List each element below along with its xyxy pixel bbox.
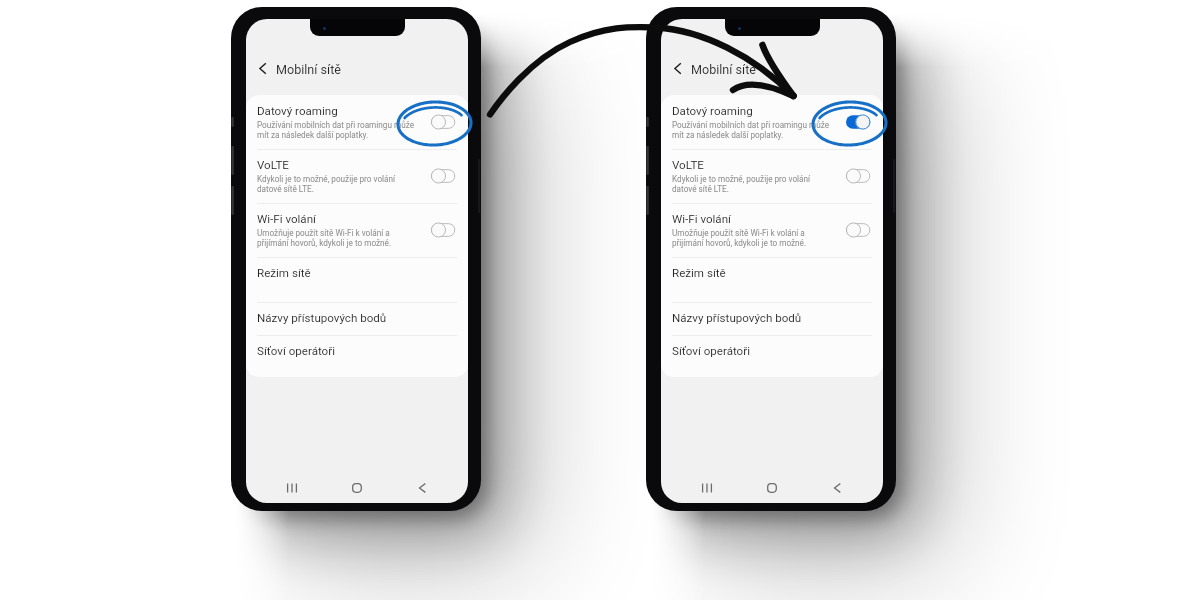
staticText: Síťoví operátoři (672, 344, 750, 358)
staticText: Mobilní sítě (276, 62, 341, 77)
button[interactable]: Toggle (431, 222, 456, 238)
button[interactable]: Recent apps (279, 475, 305, 501)
staticText: VoLTE (257, 158, 289, 172)
button[interactable]: Toggle (431, 114, 456, 130)
staticText: Datový roaming (672, 104, 753, 118)
staticText: Kdykoli je to možné, použije pro volání … (257, 174, 396, 194)
staticText: Síťoví operátoři (257, 344, 335, 358)
button[interactable]: Datový roaming (246, 95, 468, 149)
staticText: Datový roaming (257, 104, 338, 118)
staticText: Mobilní sítě (691, 62, 756, 77)
staticText: Umožňuje použít sítě Wi-Fi k volání a př… (257, 228, 392, 248)
button[interactable]: Toggle (846, 114, 871, 130)
staticText: VoLTE (672, 158, 704, 172)
button[interactable]: Režim sítě (661, 257, 883, 302)
button[interactable]: Datový roaming (661, 95, 883, 149)
staticText: Wi-Fi volání (257, 212, 316, 226)
staticText: Názvy přístupových bodů (672, 311, 802, 325)
button[interactable]: Wi-Fi volání (246, 203, 468, 257)
button[interactable]: Wi-Fi volání (661, 203, 883, 257)
button[interactable]: Názvy přístupových bodů (246, 302, 468, 336)
staticText: Používání mobilních dat při roamingu můž… (257, 120, 414, 140)
button[interactable]: Back (254, 58, 270, 79)
button[interactable]: Názvy přístupových bodů (661, 302, 883, 336)
button[interactable]: Toggle (846, 168, 871, 184)
button[interactable]: Režim sítě (246, 257, 468, 302)
button[interactable]: Toggle (431, 168, 456, 184)
staticText: Režim sítě (257, 266, 311, 280)
button[interactable]: VoLTE (661, 149, 883, 203)
staticText: Režim sítě (672, 266, 726, 280)
button[interactable]: Back (409, 475, 435, 501)
button[interactable]: Toggle (846, 222, 871, 238)
button[interactable]: Recent apps (694, 475, 720, 501)
staticText: Názvy přístupových bodů (257, 311, 387, 325)
staticText: Wi-Fi volání (672, 212, 731, 226)
button[interactable]: Home (344, 475, 370, 501)
staticText: Umožňuje použít sítě Wi-Fi k volání a př… (672, 228, 807, 248)
button[interactable]: Síťoví operátoři (661, 335, 883, 377)
button[interactable]: Síťoví operátoři (246, 335, 468, 377)
staticText: Používání mobilních dat při roamingu můž… (672, 120, 829, 140)
button[interactable]: Back (824, 475, 850, 501)
button[interactable]: Back (669, 58, 685, 79)
button[interactable]: VoLTE (246, 149, 468, 203)
staticText: Kdykoli je to možné, použije pro volání … (672, 174, 811, 194)
button[interactable]: Home (759, 475, 785, 501)
